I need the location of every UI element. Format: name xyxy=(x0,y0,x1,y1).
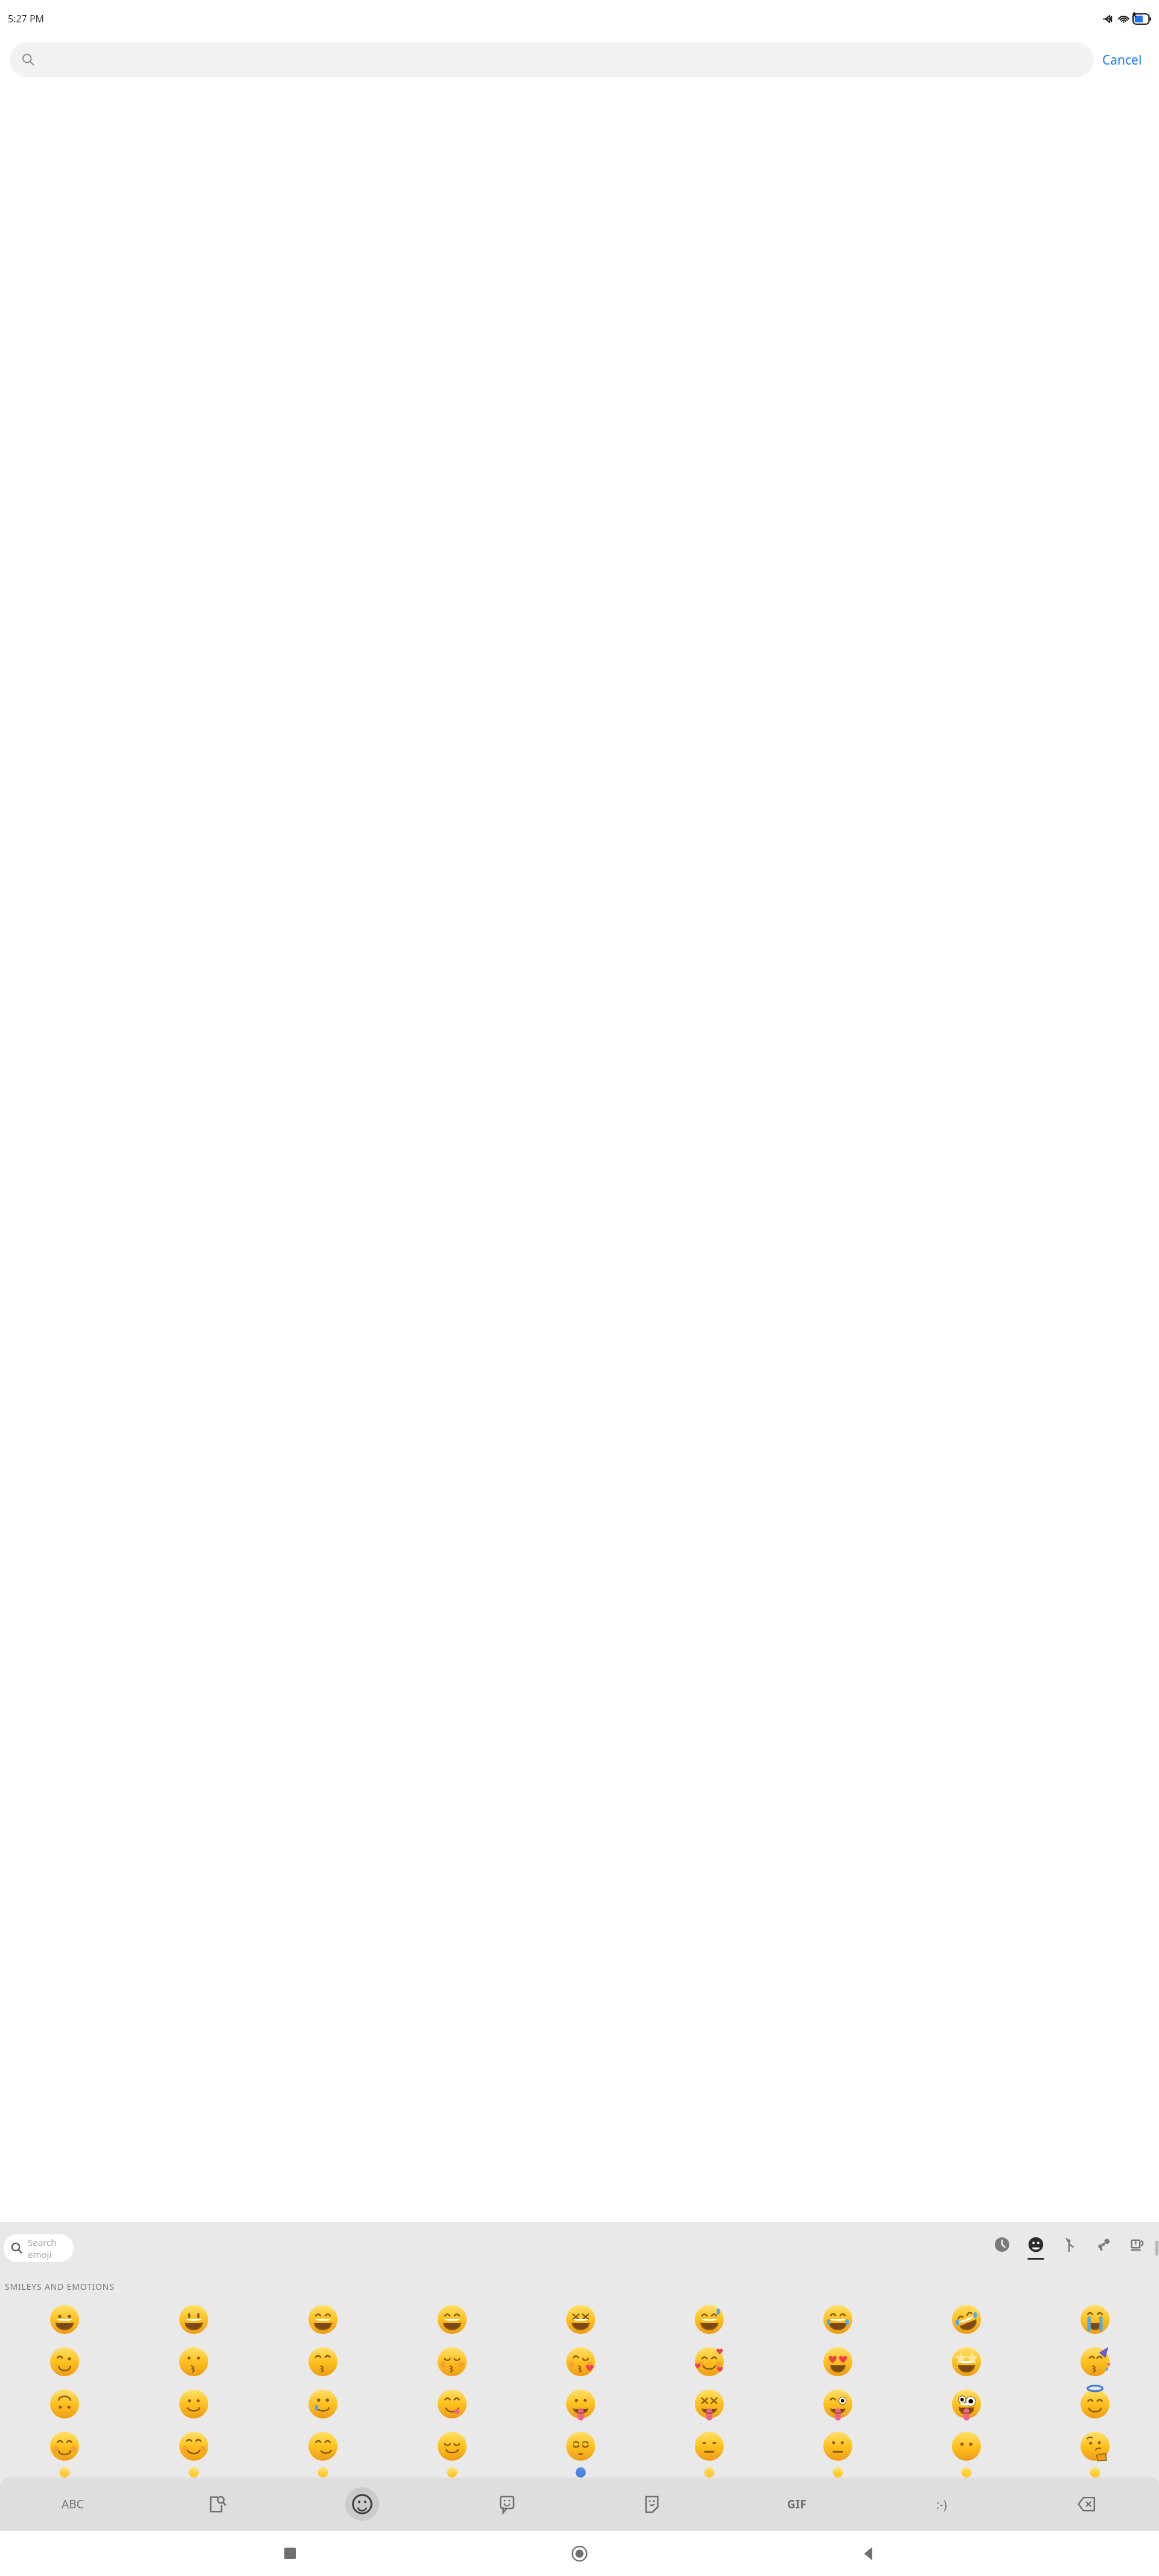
staticText: SMILEYS AND EMOTIONS xyxy=(5,2281,115,2292)
button[interactable]: Animals and nature xyxy=(1087,2222,1120,2274)
button[interactable]: sob xyxy=(1030,2298,1159,2341)
button[interactable]: zany xyxy=(902,2383,1030,2425)
button[interactable]: Letters xyxy=(0,2478,145,2531)
button[interactable]: kisssmile xyxy=(258,2341,388,2383)
button[interactable]: Sticker pack xyxy=(579,2478,724,2531)
button[interactable]: Emoji xyxy=(290,2478,435,2531)
button[interactable]: star xyxy=(902,2341,1030,2383)
button[interactable]: Smileys xyxy=(1019,2222,1053,2274)
button[interactable]: party xyxy=(1030,2341,1159,2383)
button[interactable]: blush2 xyxy=(129,2425,258,2467)
button[interactable]: wink xyxy=(0,2341,129,2383)
button[interactable]: relieved xyxy=(388,2425,516,2467)
button[interactable]: joy xyxy=(773,2298,902,2341)
staticText: Search emoji xyxy=(28,2236,74,2260)
button[interactable]: hearteyes xyxy=(773,2341,902,2383)
button[interactable]: Back xyxy=(724,2531,1014,2576)
button[interactable]: grinbig xyxy=(129,2298,258,2341)
button[interactable]: Food and drink xyxy=(1120,2222,1154,2274)
button[interactable]: slight xyxy=(129,2383,258,2425)
button[interactable]: tongue xyxy=(516,2383,645,2425)
button[interactable]: Backspace xyxy=(1014,2478,1159,2531)
button[interactable]: thinking xyxy=(1030,2425,1159,2467)
staticText: Cancel xyxy=(1102,51,1142,69)
button[interactable]: grineyes xyxy=(258,2298,388,2341)
button[interactable]: winktongue xyxy=(773,2383,902,2425)
button[interactable]: beam xyxy=(388,2298,516,2341)
button[interactable]: squint xyxy=(516,2298,645,2341)
button[interactable]: GIF xyxy=(724,2478,869,2531)
button[interactable]: Emoticons xyxy=(869,2478,1014,2531)
button[interactable]: neutral xyxy=(773,2425,902,2467)
button[interactable]: blush xyxy=(0,2425,129,2467)
button[interactable] xyxy=(10,42,1094,77)
button[interactable]: kissclosed xyxy=(388,2341,516,2383)
button[interactable]: teardrop xyxy=(258,2383,388,2425)
button[interactable]: hearts3 xyxy=(645,2341,773,2383)
button[interactable]: upsidedown xyxy=(0,2383,129,2425)
button[interactable]: grin xyxy=(0,2298,129,2341)
button[interactable]: pensive xyxy=(516,2425,645,2467)
button[interactable]: squinttongue xyxy=(645,2383,773,2425)
button[interactable]: sweat xyxy=(645,2298,773,2341)
staticText: 5:27 PM xyxy=(8,12,45,25)
button[interactable]: Search emoji xyxy=(4,2234,74,2262)
button[interactable]: Stickers xyxy=(435,2478,579,2531)
button[interactable]: kissheart xyxy=(516,2341,645,2383)
button[interactable]: Recent xyxy=(985,2222,1019,2274)
button[interactable]: smirk xyxy=(258,2425,388,2467)
staticText: GIF xyxy=(787,2496,806,2512)
button[interactable]: noMouth xyxy=(902,2425,1030,2467)
button[interactable]: kiss xyxy=(129,2341,258,2383)
button[interactable]: Cancel xyxy=(1094,46,1151,74)
button[interactable]: People xyxy=(1053,2222,1087,2274)
staticText: :-) xyxy=(936,2496,947,2513)
button[interactable]: rofl xyxy=(902,2298,1030,2341)
button[interactable]: Home xyxy=(435,2531,724,2576)
button[interactable]: Search xyxy=(145,2478,290,2531)
button[interactable]: expressionless xyxy=(645,2425,773,2467)
button[interactable]: halo xyxy=(1030,2383,1159,2425)
staticText: ABC xyxy=(62,2496,84,2512)
button[interactable]: Recents xyxy=(145,2531,435,2576)
button[interactable]: yum xyxy=(388,2383,516,2425)
